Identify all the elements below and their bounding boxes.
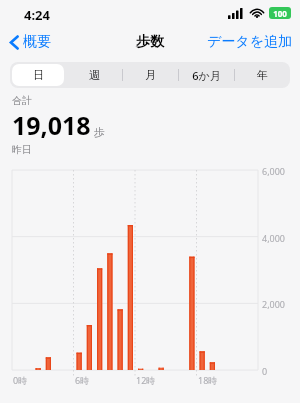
button[interactable]: 概要 [8, 31, 53, 53]
button[interactable]: 6か月 [178, 62, 234, 88]
staticText: 12時 [136, 374, 156, 386]
button[interactable]: 日 [10, 62, 66, 88]
staticText: 6,000 [262, 165, 286, 177]
staticText: 概要 [23, 33, 51, 51]
staticText: 合計 [12, 94, 32, 107]
button[interactable]: データを追加 [205, 31, 294, 53]
staticText: 18時 [198, 374, 218, 386]
staticText: 歩数 [136, 33, 164, 51]
staticText: 0時 [13, 374, 28, 386]
staticText: 100 [273, 8, 287, 19]
staticText: 年 [257, 68, 268, 82]
button[interactable]: 年 [234, 62, 290, 88]
staticText: 6時 [75, 374, 90, 386]
button[interactable]: 月 [122, 62, 178, 88]
staticText: 歩 [94, 125, 105, 139]
staticText: 週 [89, 68, 100, 82]
staticText: データを追加 [207, 33, 292, 51]
staticText: 4:24 [24, 6, 50, 24]
staticText: 昨日 [12, 143, 32, 156]
staticText: 2,000 [262, 298, 286, 310]
staticText: 6か月 [192, 68, 221, 83]
staticText: 日 [33, 68, 44, 82]
button[interactable]: 週 [66, 62, 122, 88]
staticText: 19,018 [12, 108, 91, 142]
staticText: 4,000 [262, 232, 286, 244]
staticText: 0 [262, 365, 268, 377]
staticText: 月 [145, 68, 156, 82]
